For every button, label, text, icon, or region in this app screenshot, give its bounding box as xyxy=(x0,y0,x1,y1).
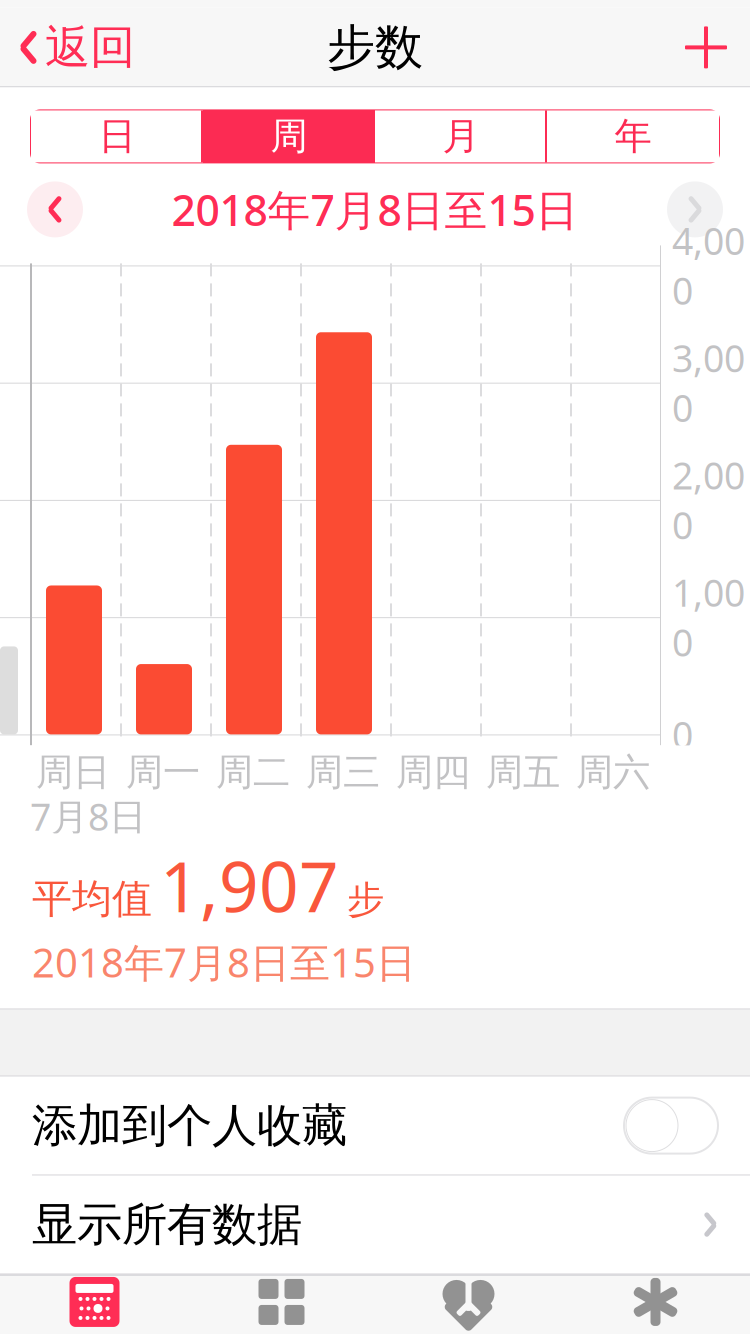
staticText: 3,000 xyxy=(672,333,745,432)
button[interactable]: 显示所有数据 xyxy=(0,1176,750,1274)
staticText: 周五 xyxy=(486,749,560,795)
staticText: 周四 xyxy=(396,749,470,795)
button[interactable]: 日 xyxy=(31,110,203,162)
staticText: 月 xyxy=(442,113,479,159)
button[interactable]: 添加 xyxy=(670,7,750,87)
button[interactable]: 数据来源 xyxy=(375,1275,562,1334)
button[interactable]: 下一周 xyxy=(660,174,730,244)
staticText: 年 xyxy=(614,113,651,159)
staticText: 2,000 xyxy=(672,450,745,549)
staticText: 2018年7月8日至15日 xyxy=(171,181,578,238)
staticText: 显示所有数据 xyxy=(32,1197,302,1252)
staticText: 周日 xyxy=(36,749,110,795)
button[interactable]: 月 xyxy=(375,110,547,162)
button[interactable]: 上一周 xyxy=(20,174,90,244)
staticText: 1,907 xyxy=(160,839,339,931)
staticText: 步数 xyxy=(327,18,423,77)
button[interactable]: 医疗急救卡 xyxy=(562,1275,749,1334)
staticText: 2018年7月8日至15日 xyxy=(32,935,416,989)
staticText: 4,000 xyxy=(672,216,745,315)
staticText: 周三 xyxy=(306,749,380,795)
staticText: 1,000 xyxy=(672,568,745,667)
staticText: 平均值 xyxy=(32,874,152,924)
staticText: 周六 xyxy=(576,749,650,795)
staticText: 周一 xyxy=(126,749,200,795)
staticText: 0 xyxy=(672,710,693,759)
staticText: 返回 xyxy=(45,20,135,75)
button[interactable]: 今天 xyxy=(1,1275,188,1334)
staticText: 日 xyxy=(98,113,135,159)
staticText: 步 xyxy=(347,877,384,923)
button[interactable]: 周 xyxy=(203,110,375,162)
staticText: 7月8日 xyxy=(30,791,146,841)
staticText: 周 xyxy=(270,113,307,159)
button[interactable]: 添加到个人收藏 xyxy=(0,1077,750,1175)
staticText: 周二 xyxy=(216,749,290,795)
staticText: 添加到个人收藏 xyxy=(32,1098,347,1153)
button[interactable]: 健康数据 xyxy=(188,1275,375,1334)
button[interactable]: 返回 xyxy=(0,7,153,87)
button[interactable]: 年 xyxy=(547,110,719,162)
